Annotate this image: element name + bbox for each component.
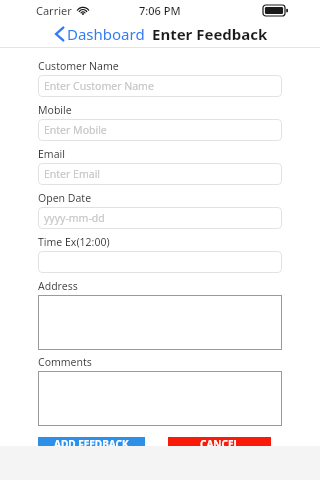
staticText: Open Date xyxy=(38,191,92,205)
button[interactable]: yyyy-mm-dd xyxy=(38,207,282,229)
staticText: Enter Mobile xyxy=(44,123,107,137)
staticText: Customer Name xyxy=(38,59,119,73)
staticText: Enter Feedback xyxy=(152,24,268,44)
button[interactable] xyxy=(38,251,282,273)
staticText: Comments xyxy=(38,355,92,369)
staticText: Enter Email xyxy=(44,167,101,181)
staticText: Address xyxy=(38,279,78,293)
button[interactable]: Enter Mobile xyxy=(38,119,282,141)
staticText: 7:06 PM xyxy=(139,3,181,18)
button[interactable]: ADD FEEDBACK xyxy=(38,437,145,446)
button[interactable]: Dashboard xyxy=(53,22,147,46)
button[interactable] xyxy=(38,295,282,350)
staticText: Enter Customer Name xyxy=(44,79,154,93)
staticText: CANCEL xyxy=(200,437,240,446)
button[interactable]: CANCEL xyxy=(168,437,271,446)
staticText: Mobile xyxy=(38,103,72,117)
button[interactable]: Enter Email xyxy=(38,163,282,185)
staticText: Dashboard xyxy=(67,24,145,44)
staticText: Email xyxy=(38,147,65,161)
staticText: yyyy-mm-dd xyxy=(44,211,105,225)
staticText: ADD FEEDBACK xyxy=(54,437,129,446)
staticText: Time Ex(12:00) xyxy=(38,235,110,249)
staticText: Carrier xyxy=(36,3,72,18)
button[interactable]: Enter Customer Name xyxy=(38,75,282,97)
button[interactable] xyxy=(38,371,282,426)
